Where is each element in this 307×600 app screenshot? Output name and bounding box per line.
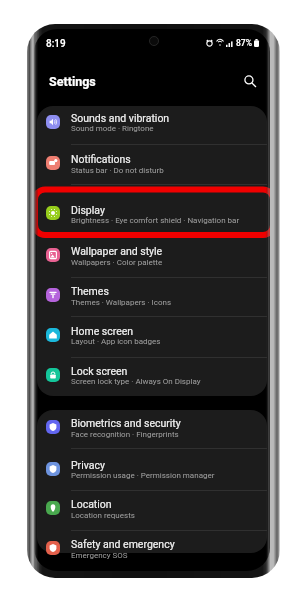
button[interactable]	[37, 357, 267, 395]
button[interactable]	[37, 184, 267, 237]
staticText: Wallpapers · Color palette	[71, 258, 266, 267]
staticText: Settings	[49, 74, 96, 89]
staticText: Home screen	[71, 325, 266, 337]
staticText: Sound mode · Ringtone	[71, 124, 266, 133]
staticText: Biometrics and security	[71, 417, 266, 429]
button[interactable]: Search	[239, 70, 261, 92]
staticText: Sounds and vibration	[71, 112, 266, 124]
staticText: Wallpaper and style	[71, 245, 266, 257]
staticText: Brightness · Eye comfort shield · Naviga…	[71, 216, 266, 225]
button[interactable]	[37, 237, 267, 277]
button[interactable]	[37, 490, 267, 530]
staticText: Privacy	[71, 459, 266, 471]
staticText: Status bar · Do not disturb	[71, 166, 266, 175]
staticText: Safety and emergency	[71, 538, 266, 550]
staticText: Themes · Wallpapers · Icons	[71, 298, 266, 307]
button[interactable]	[37, 316, 267, 357]
staticText: Layout · App icon badges	[71, 337, 266, 346]
staticText: Face recognition · Fingerprints	[71, 430, 266, 439]
staticText: Permission usage · Permission manager	[71, 471, 266, 480]
staticText: 87%	[236, 38, 252, 48]
staticText: Location requests	[71, 511, 266, 520]
staticText: Screen lock type · Always On Display	[71, 377, 266, 386]
button[interactable]	[37, 410, 267, 448]
staticText: Notifications	[71, 153, 266, 165]
button[interactable]	[37, 106, 267, 145]
staticText: Emergency SOS	[71, 551, 266, 560]
button[interactable]	[37, 530, 267, 553]
staticText: Themes	[71, 285, 266, 297]
button[interactable]	[37, 144, 267, 184]
button[interactable]	[37, 277, 267, 316]
staticText: 8:19	[46, 38, 66, 50]
staticText: Display	[71, 204, 266, 216]
staticText: Location	[71, 498, 266, 510]
staticText: Lock screen	[71, 365, 266, 377]
button[interactable]	[37, 448, 267, 490]
